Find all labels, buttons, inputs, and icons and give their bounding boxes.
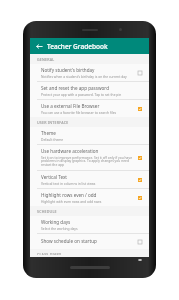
button[interactable]: Notify student's birthday: [30, 64, 149, 81]
button[interactable]: Use a external File Browser: [135, 104, 144, 113]
staticText: Vertical text in columns in list views: [41, 181, 96, 185]
staticText: Theme: [41, 130, 56, 136]
staticText: Notifies when a student's birthday is on…: [41, 74, 127, 78]
staticText: Highlight rows even / odd: [41, 192, 97, 198]
staticText: Set and reset the app password: [41, 85, 109, 91]
button[interactable]: Vertical Text: [135, 175, 144, 184]
staticText: Vertical Text: [41, 174, 67, 180]
button[interactable]: Notify student's birthday: [135, 68, 144, 77]
staticText: GENERAL: [37, 57, 55, 62]
staticText: CLASS DIARY: [37, 252, 62, 255]
button[interactable]: Highlight rows even / odd: [30, 189, 149, 206]
button[interactable]: Show schedule on startup: [30, 234, 149, 249]
staticText: Working days: [41, 219, 71, 225]
staticText: Select the working days: [41, 226, 78, 230]
staticText: USER INTERFACE: [37, 120, 69, 125]
button[interactable]: Navigate up: [34, 41, 45, 52]
button[interactable]: Use hardware acceleration: [135, 153, 144, 162]
staticText: Teacher Gradebook: [47, 42, 108, 51]
button[interactable]: Use hardware acceleration: [30, 145, 149, 170]
button[interactable]: Set and reset the app password: [30, 82, 149, 99]
staticText: Notify student's birthday: [41, 67, 95, 73]
button[interactable]: Working days: [30, 216, 149, 233]
button[interactable]: Vertical Text: [30, 171, 149, 188]
staticText: SCHEDULE: [37, 209, 57, 214]
staticText: Highlight with even rows and odd rows: [41, 199, 102, 203]
button[interactable]: Highlight rows even / odd: [135, 193, 144, 202]
staticText: Use hardware acceleration: [41, 148, 99, 154]
staticText: Default theme: [41, 137, 64, 141]
staticText: You can use a favorite file browser to s…: [41, 110, 117, 114]
staticText: Show schedule on startup: [41, 238, 97, 244]
staticText: Use a external File Browser: [41, 103, 100, 109]
staticText: Protect your app with a password. Tap to…: [41, 92, 122, 96]
button[interactable]: Show schedule on startup: [135, 237, 144, 246]
button[interactable]: Theme: [30, 127, 149, 144]
staticText: Set it on to improve performance. Set it…: [41, 155, 132, 167]
button[interactable]: Use a external File Browser: [30, 100, 149, 117]
